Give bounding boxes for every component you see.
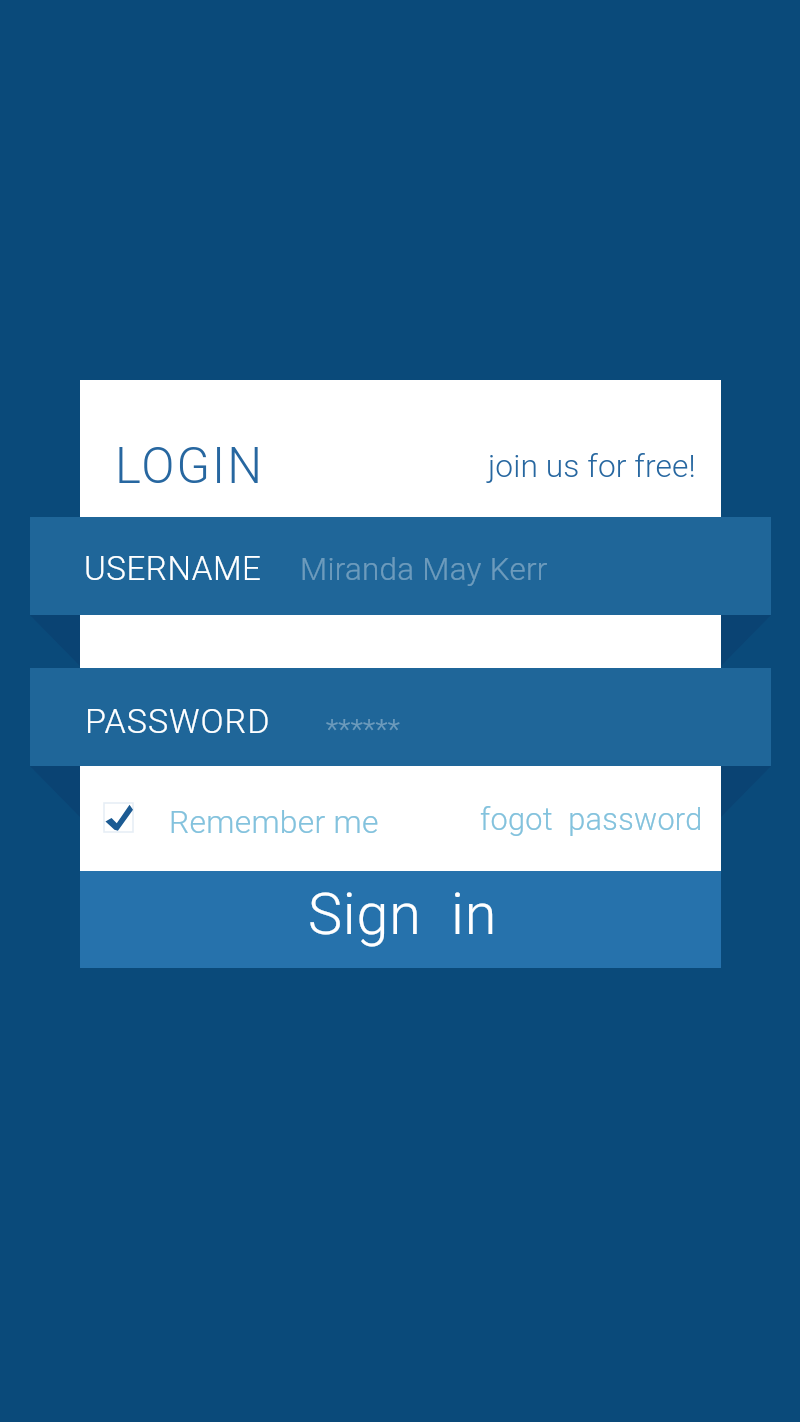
staticText: USERNAME: [84, 549, 262, 588]
staticText: join us for free!: [488, 448, 696, 485]
staticText: PASSWORD: [85, 701, 271, 741]
button[interactable]: join us for free!: [481, 443, 699, 489]
button[interactable]: fogot password: [475, 797, 705, 843]
button[interactable]: PASSWORD: [30, 668, 771, 766]
button[interactable]: Remember me checkbox, checked: [98, 798, 385, 846]
staticText: fogot password: [480, 802, 703, 838]
button[interactable]: LOGIN: [110, 431, 266, 491]
other: Remember me checkbox, checked: [104, 803, 133, 832]
staticText: ******: [326, 713, 401, 746]
staticText: Sign in: [308, 881, 498, 948]
button[interactable]: USERNAME: [30, 517, 771, 615]
staticText: Remember me: [169, 804, 379, 841]
staticText: Miranda May Kerr: [300, 551, 548, 588]
button[interactable]: Sign in: [80, 871, 721, 968]
staticText: LOGIN: [115, 437, 264, 494]
